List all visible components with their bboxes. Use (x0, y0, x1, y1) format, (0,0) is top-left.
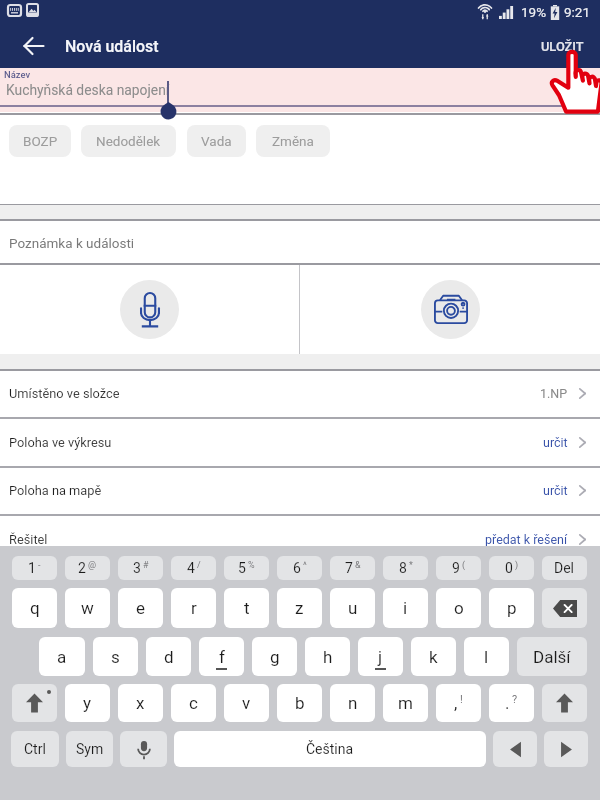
button[interactable]: s (93, 637, 138, 676)
button[interactable]: Record audio note (0, 265, 299, 354)
button[interactable]: q (12, 588, 57, 628)
staticText: ^ (303, 560, 307, 571)
button[interactable]: ULOŽIT (525, 27, 600, 66)
staticText: Del (554, 560, 575, 576)
button[interactable]: h (305, 637, 350, 676)
button[interactable]: Změna (256, 125, 330, 157)
staticText: q (30, 598, 40, 618)
button[interactable]: l (464, 637, 509, 676)
button[interactable]: Sym (66, 731, 113, 767)
button[interactable]: Voice input (120, 731, 167, 767)
button[interactable]: Poloha na mapě (0, 467, 600, 514)
button[interactable]: Řešitel (0, 516, 600, 563)
staticText: ( (462, 560, 466, 571)
button[interactable]: 1 (12, 556, 57, 580)
button[interactable]: i (383, 588, 428, 628)
button[interactable]: d (146, 637, 191, 676)
staticText: Změna (272, 133, 314, 149)
staticText: Název (4, 69, 31, 80)
button[interactable]: o (436, 588, 481, 628)
button[interactable]: Move left (493, 731, 537, 767)
button[interactable]: p (489, 588, 534, 628)
button[interactable]: Umístěno ve složce (0, 370, 600, 417)
staticText: 9 (452, 560, 460, 576)
staticText: i (403, 598, 408, 618)
button[interactable]: 7 (330, 556, 375, 580)
button[interactable]: f (199, 637, 244, 676)
staticText: a (57, 647, 67, 667)
staticText: . (505, 693, 510, 713)
staticText: g (270, 647, 280, 667)
button[interactable]: 5 (224, 556, 269, 580)
other: Move left (509, 741, 522, 758)
button[interactable]: Shift (12, 684, 57, 722)
button[interactable]: Backspace (542, 588, 587, 628)
button[interactable]: a (39, 637, 85, 676)
button[interactable]: , (436, 684, 481, 722)
button[interactable]: w (65, 588, 110, 628)
button[interactable]: y (65, 684, 110, 722)
staticText: Nová událost (65, 37, 159, 56)
button[interactable]: Back (18, 30, 50, 62)
button[interactable]: 3 (118, 556, 163, 580)
button[interactable]: x (118, 684, 163, 722)
staticText: k (429, 647, 438, 667)
staticText: Poloha ve výkresu (9, 435, 112, 450)
staticText: 1.NP (540, 386, 568, 401)
staticText: Poloha na mapě (9, 483, 102, 498)
staticText: w (81, 598, 94, 618)
button[interactable]: j (358, 637, 403, 676)
button[interactable]: t (224, 588, 269, 628)
staticText: s (111, 647, 120, 667)
staticText: 3 (133, 560, 141, 576)
button[interactable]: g (252, 637, 297, 676)
button[interactable]: 0 (489, 556, 534, 580)
button[interactable]: v (224, 684, 269, 722)
button[interactable]: 8 (383, 556, 428, 580)
button[interactable]: 4 (171, 556, 216, 580)
button[interactable]: . (489, 684, 534, 722)
button[interactable]: 6 (277, 556, 322, 580)
staticText: - (38, 560, 41, 571)
staticText: l (484, 647, 489, 667)
button[interactable]: e (118, 588, 163, 628)
staticText: 5 (238, 560, 246, 576)
staticText: určit (543, 483, 568, 498)
button[interactable]: Vada (187, 125, 246, 157)
button[interactable]: z (277, 588, 322, 628)
button[interactable]: m (383, 684, 428, 722)
button[interactable]: r (171, 588, 216, 628)
staticText: x (136, 693, 145, 713)
button[interactable]: Take photo (300, 265, 600, 354)
staticText: b (295, 693, 305, 713)
button[interactable]: n (330, 684, 375, 722)
button[interactable]: Poloha ve výkresu (0, 419, 600, 466)
button[interactable]: Shift (542, 684, 587, 722)
button[interactable]: Poznámka k události (0, 221, 600, 264)
staticText: , (454, 693, 458, 713)
button[interactable]: Čeština (174, 731, 486, 767)
staticText: 7 (345, 560, 353, 576)
staticText: 8 (399, 560, 407, 576)
button[interactable]: Nedodělek (81, 125, 176, 157)
button[interactable]: Ctrl (11, 731, 59, 767)
staticText: j (378, 647, 383, 667)
staticText: Vada (201, 133, 232, 149)
staticText: 4 (187, 560, 195, 576)
button[interactable]: 2 (65, 556, 110, 580)
button[interactable]: k (411, 637, 456, 676)
button[interactable]: b (277, 684, 322, 722)
staticText: 0 (505, 560, 513, 576)
button[interactable]: BOZP (9, 125, 71, 157)
staticText: o (454, 598, 464, 618)
staticText: t (244, 598, 250, 618)
staticText: ! (460, 693, 463, 706)
button[interactable]: Další (517, 637, 587, 676)
staticText: Sym (76, 741, 104, 757)
button[interactable]: c (171, 684, 216, 722)
button[interactable]: Del (542, 556, 587, 580)
staticText: r (191, 598, 197, 618)
button[interactable]: u (330, 588, 375, 628)
button[interactable]: 9 (436, 556, 481, 580)
button[interactable]: Move right (544, 731, 588, 767)
